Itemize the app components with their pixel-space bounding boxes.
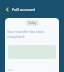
button[interactable]: Back [3, 5, 12, 14]
staticText: Today [28, 21, 37, 25]
staticText: Your transfer has been completed [7, 29, 57, 39]
staticText: Full account [12, 7, 36, 12]
